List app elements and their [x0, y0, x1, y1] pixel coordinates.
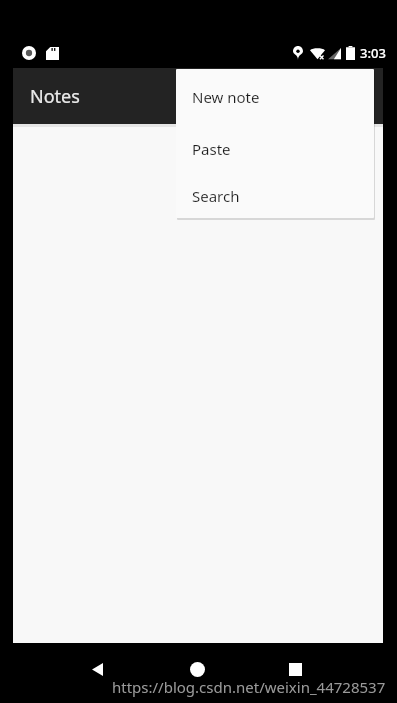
- button[interactable]: Search: [176, 173, 374, 218]
- button[interactable]: Paste: [176, 125, 374, 173]
- button[interactable]: Home: [184, 656, 210, 682]
- button[interactable]: Recent apps: [282, 656, 308, 682]
- staticText: New note: [192, 87, 260, 107]
- staticText: Paste: [192, 139, 231, 159]
- staticText: 3:03: [360, 44, 386, 62]
- staticText: Search: [192, 186, 240, 206]
- button[interactable]: New note: [176, 69, 374, 125]
- button[interactable]: Notes: [13, 68, 383, 124]
- staticText: Notes: [30, 84, 80, 109]
- button[interactable]: Back: [84, 656, 110, 682]
- staticText: https://blog.csdn.net/weixin_44728537: [112, 677, 386, 697]
